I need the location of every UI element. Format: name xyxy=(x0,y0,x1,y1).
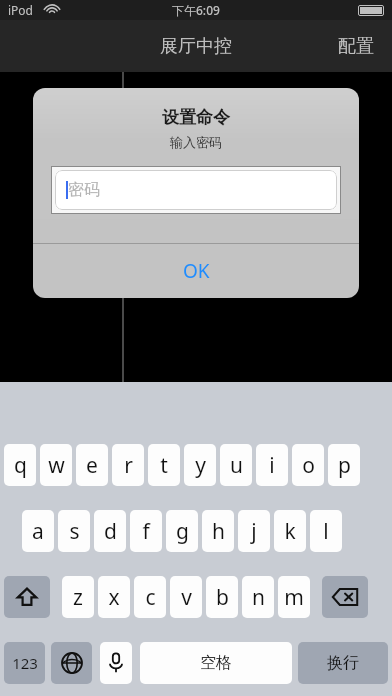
staticText: iPod xyxy=(8,2,33,18)
staticText: f xyxy=(142,517,150,546)
staticText: b xyxy=(216,583,229,612)
button[interactable]: z xyxy=(62,576,94,618)
button[interactable]: t xyxy=(148,444,180,486)
staticText: t xyxy=(160,451,168,480)
staticText: p xyxy=(338,451,351,480)
staticText: k xyxy=(284,517,296,546)
button[interactable]: h xyxy=(202,510,234,552)
staticText: l xyxy=(323,517,329,546)
button[interactable]: 空格 xyxy=(140,642,292,684)
staticText: u xyxy=(230,451,243,480)
staticText: 输入密码 xyxy=(170,134,222,150)
button[interactable]: c xyxy=(134,576,166,618)
button[interactable]: a xyxy=(22,510,54,552)
button[interactable]: m xyxy=(278,576,310,618)
staticText: 密码 xyxy=(68,180,100,200)
button[interactable]: OK xyxy=(33,244,359,298)
staticText: 配置 xyxy=(338,35,374,58)
button[interactable]: k xyxy=(274,510,306,552)
staticText: s xyxy=(69,517,80,546)
button[interactable]: q xyxy=(4,444,36,486)
button[interactable]: 配置 xyxy=(332,29,380,64)
staticText: a xyxy=(32,517,44,546)
staticText: z xyxy=(73,583,83,612)
button[interactable]: i xyxy=(256,444,288,486)
staticText: 下午6:09 xyxy=(172,2,220,18)
button[interactable]: d xyxy=(94,510,126,552)
button[interactable]: o xyxy=(292,444,324,486)
button[interactable]: w xyxy=(40,444,72,486)
staticText: e xyxy=(86,451,98,480)
button[interactable]: 123 xyxy=(4,642,45,684)
button[interactable]: y xyxy=(184,444,216,486)
button[interactable]: g xyxy=(166,510,198,552)
button[interactable]: 换行 xyxy=(298,642,388,684)
staticText: o xyxy=(302,451,315,480)
staticText: v xyxy=(181,583,192,612)
button[interactable]: Shift xyxy=(4,576,50,618)
staticText: i xyxy=(269,451,275,480)
button[interactable]: r xyxy=(112,444,144,486)
button[interactable]: Dictation xyxy=(100,642,132,684)
button[interactable]: Backspace xyxy=(322,576,368,618)
staticText: r xyxy=(124,451,133,480)
button[interactable]: s xyxy=(58,510,90,552)
button[interactable]: e xyxy=(76,444,108,486)
staticText: w xyxy=(48,451,65,480)
button[interactable]: Switch keyboard xyxy=(51,642,92,684)
button[interactable]: j xyxy=(238,510,270,552)
staticText: 设置命令 xyxy=(162,107,230,128)
staticText: j xyxy=(251,517,257,546)
button[interactable]: u xyxy=(220,444,252,486)
staticText: 换行 xyxy=(327,653,359,673)
button[interactable]: p xyxy=(328,444,360,486)
button[interactable]: l xyxy=(310,510,342,552)
staticText: h xyxy=(212,517,225,546)
button[interactable]: b xyxy=(206,576,238,618)
staticText: d xyxy=(104,517,117,546)
staticText: c xyxy=(145,583,156,612)
button[interactable]: 展厅中控 xyxy=(154,29,238,64)
staticText: n xyxy=(252,583,265,612)
button[interactable]: v xyxy=(170,576,202,618)
button[interactable]: n xyxy=(242,576,274,618)
staticText: y xyxy=(195,451,206,480)
button[interactable]: f xyxy=(130,510,162,552)
button[interactable]: 密码 xyxy=(55,170,337,210)
staticText: x xyxy=(108,583,120,612)
staticText: m xyxy=(284,583,304,612)
button[interactable]: x xyxy=(98,576,130,618)
staticText: 空格 xyxy=(200,653,232,673)
staticText: g xyxy=(176,517,189,546)
staticText: OK xyxy=(183,258,210,284)
staticText: 123 xyxy=(12,653,38,673)
staticText: q xyxy=(14,451,27,480)
staticText: 展厅中控 xyxy=(160,35,232,58)
